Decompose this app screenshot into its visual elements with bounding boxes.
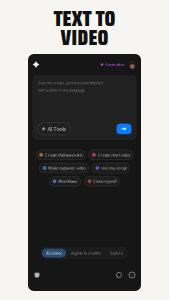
button[interactable]: AI videos (42, 249, 66, 257)
staticText: Generative (105, 62, 124, 67)
button[interactable]: Use my script (92, 163, 130, 173)
staticText: Agents & models (71, 250, 101, 256)
button[interactable]: Workflows (49, 176, 81, 186)
button[interactable]: Explore (106, 249, 127, 257)
button[interactable]: Clone myself (84, 176, 120, 186)
staticText: TEXT TO (53, 2, 115, 35)
button[interactable]: Make explainer video (39, 163, 89, 173)
staticText: VIDEO (60, 21, 108, 54)
button[interactable]: Home (32, 61, 39, 68)
button[interactable]: Create short video (89, 150, 133, 160)
staticText: Use my script (101, 165, 126, 171)
staticText: Make explainer video (48, 165, 85, 171)
staticText: Clone myself (93, 179, 116, 184)
staticText: Give me a topic, premise and detailed (37, 80, 102, 85)
button[interactable]: Account (128, 60, 136, 69)
staticText: AI Tools (47, 125, 66, 132)
button[interactable]: Send (116, 124, 131, 134)
staticText: instructions in any language (37, 87, 84, 93)
button[interactable]: Generative (100, 62, 124, 67)
staticText: Create short video (98, 152, 130, 157)
button[interactable]: Agents & models (67, 249, 105, 257)
staticText: AI videos (46, 250, 62, 256)
button[interactable]: AI Tools (37, 123, 71, 135)
button[interactable]: Help (129, 272, 135, 278)
button[interactable]: Library (34, 272, 40, 278)
staticText: Create Halloween Ad (45, 152, 82, 157)
button[interactable]: Chat (116, 272, 122, 278)
button[interactable]: Create Halloween Ad (36, 150, 85, 160)
staticText: Workflows (58, 179, 77, 184)
staticText: Explore (110, 250, 123, 256)
